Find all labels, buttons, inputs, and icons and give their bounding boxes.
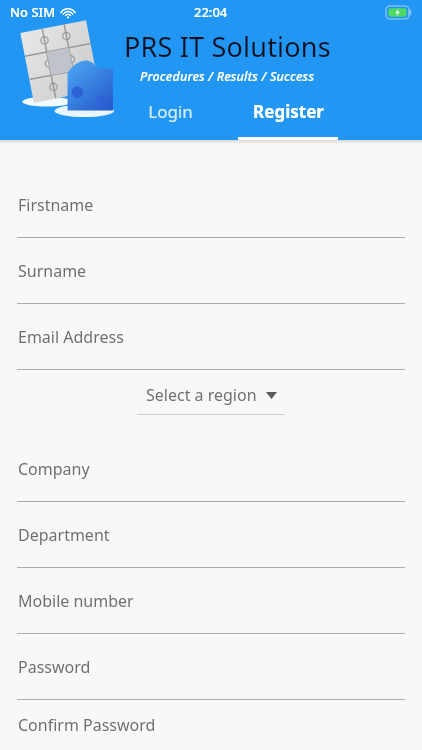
button[interactable]: Confirm Password xyxy=(0,700,422,750)
staticText: Login xyxy=(148,100,193,123)
staticText: Firstname xyxy=(18,194,94,216)
button[interactable]: Select a region xyxy=(146,384,277,406)
button[interactable]: Register xyxy=(238,94,338,140)
button[interactable]: Firstname xyxy=(0,172,422,238)
button[interactable]: Department xyxy=(0,502,422,568)
button[interactable]: Password xyxy=(0,634,422,700)
staticText: Procedures / Results / Success xyxy=(140,68,315,85)
staticText: Department xyxy=(18,524,110,546)
staticText: Confirm Password xyxy=(18,714,156,736)
staticText: Register xyxy=(253,100,324,123)
button[interactable]: Email Address xyxy=(0,304,422,370)
button[interactable]: Mobile number xyxy=(0,568,422,634)
staticText: PRS IT Solutions xyxy=(124,28,331,65)
staticText: Email Address xyxy=(18,326,124,348)
button[interactable]: Login xyxy=(120,94,220,140)
button[interactable]: Surname xyxy=(0,238,422,304)
staticText: Surname xyxy=(18,260,87,282)
staticText: Company xyxy=(18,458,90,480)
button[interactable]: Company xyxy=(0,436,422,502)
staticText: Mobile number xyxy=(18,590,134,612)
staticText: Select a region xyxy=(146,384,257,406)
staticText: No SIM xyxy=(10,3,56,21)
staticText: Password xyxy=(18,656,91,678)
staticText: 22:04 xyxy=(194,3,228,21)
